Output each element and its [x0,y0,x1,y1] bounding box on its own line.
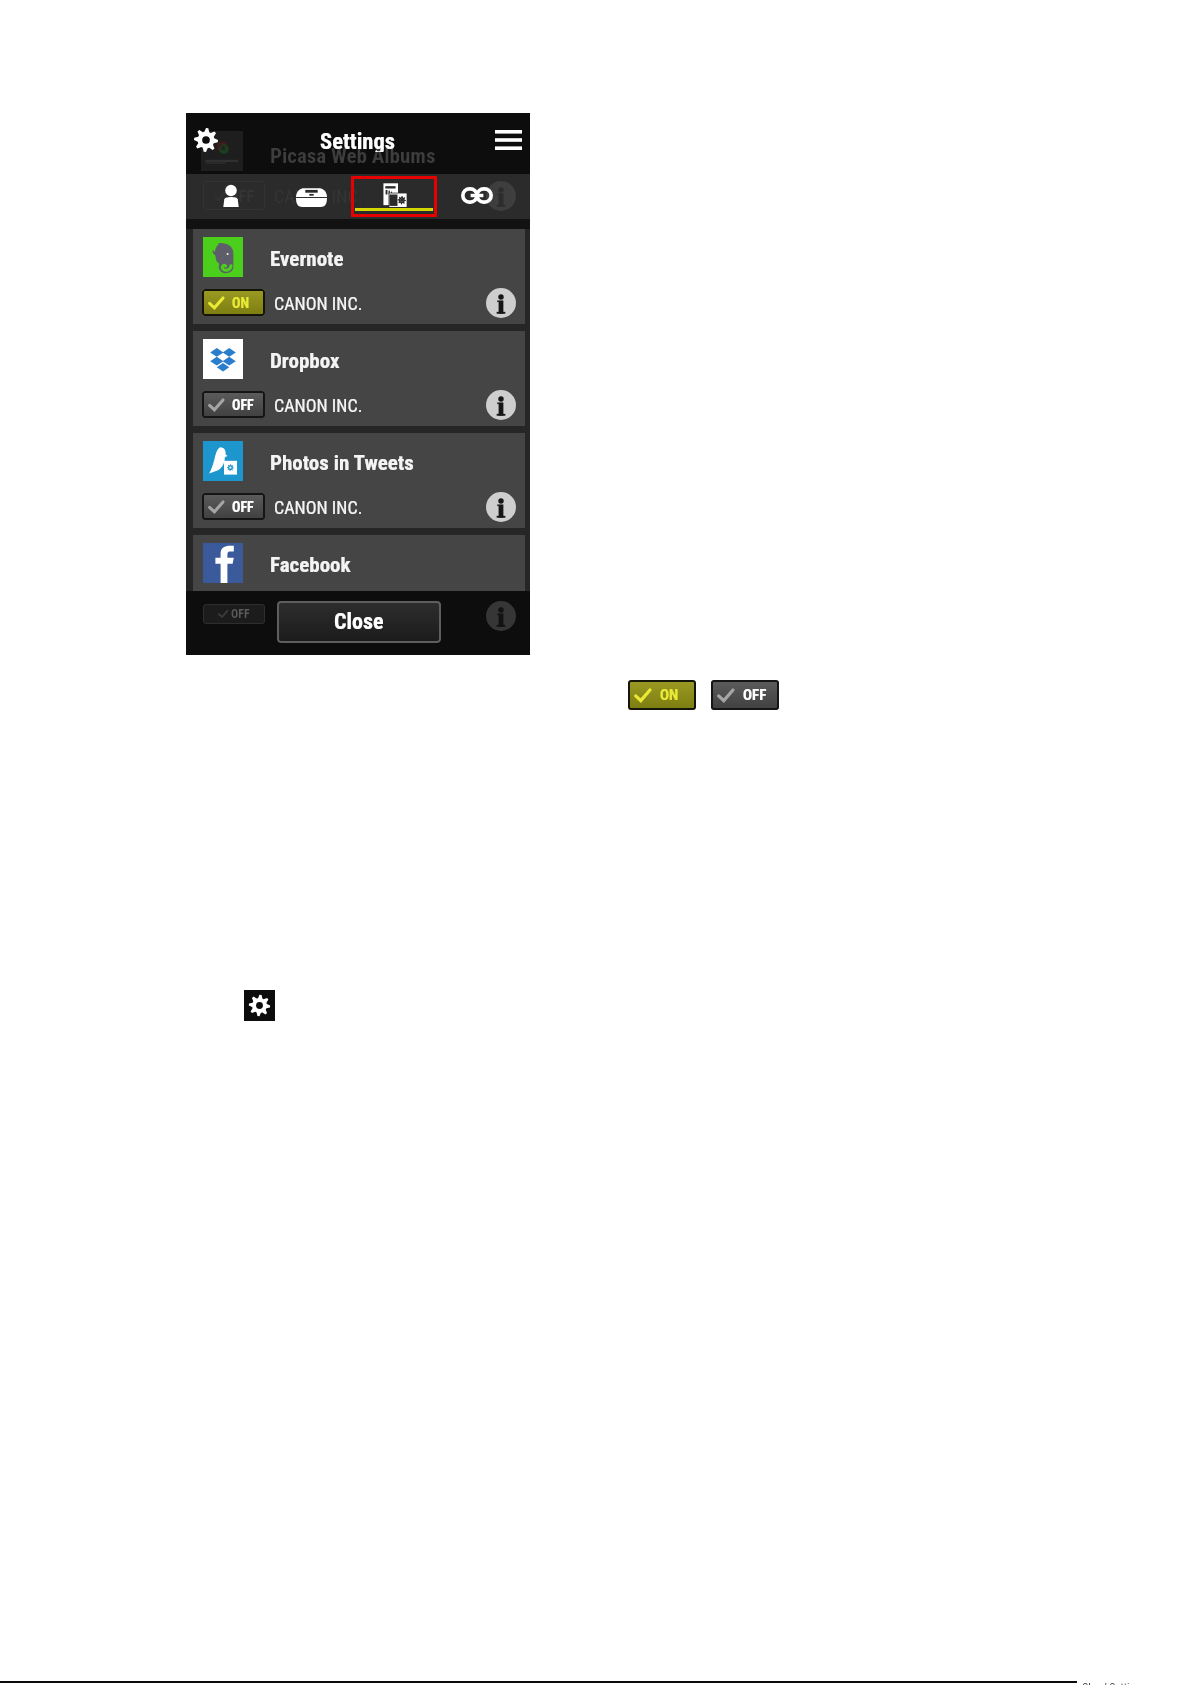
button[interactable]: Info [486,390,516,420]
button[interactable]: Disabled, OFF [711,680,779,710]
button[interactable]: Disabled, OFF [202,391,265,418]
staticText: Photos in Tweets [270,451,414,476]
staticText: Cloud Settings [1082,1681,1146,1685]
button[interactable]: Printer [286,174,337,219]
button[interactable]: Info [486,492,516,522]
staticText: Dropbox [270,349,340,374]
staticText: CANON INC. [274,395,363,416]
button[interactable]: Account [213,174,249,219]
button[interactable]: Link [451,174,503,219]
button[interactable]: Enabled, ON [628,680,696,710]
staticText: CANON INC. [274,599,363,620]
button[interactable]: Close [277,601,441,643]
staticText: Settings [320,128,395,152]
staticText: Evernote [270,247,344,272]
staticText: OFF [231,607,250,621]
button[interactable]: Facebook [193,535,525,630]
staticText: ON [232,295,250,311]
button[interactable]: Menu [489,126,527,154]
staticText: Close [334,609,384,635]
button[interactable]: Cloud apps [371,174,418,219]
staticText: OFF [232,601,254,617]
staticText: CANON INC. [274,186,363,206]
button[interactable]: Settings [194,128,218,152]
button[interactable]: Settings [244,990,275,1021]
staticText: CANON INC. [274,497,363,518]
button[interactable]: Dropbox [193,331,525,426]
staticText: OFF [232,499,254,515]
button[interactable]: Disabled, OFF [202,595,265,622]
button[interactable]: Disabled, OFF [202,493,265,520]
button[interactable]: Evernote [193,229,525,324]
button[interactable]: Photos in Tweets [193,433,525,528]
staticText: ON [660,686,679,704]
button[interactable]: Info [486,594,516,624]
button[interactable]: Enabled, ON [202,289,265,316]
staticText: CANON INC. [274,293,363,314]
staticText: OFF [743,686,767,704]
staticText: Picasa Web Albums [270,144,436,168]
staticText: OFF [228,186,255,206]
staticText: Facebook [270,553,351,578]
staticText: OFF [232,397,254,413]
button[interactable]: Info [486,288,516,318]
